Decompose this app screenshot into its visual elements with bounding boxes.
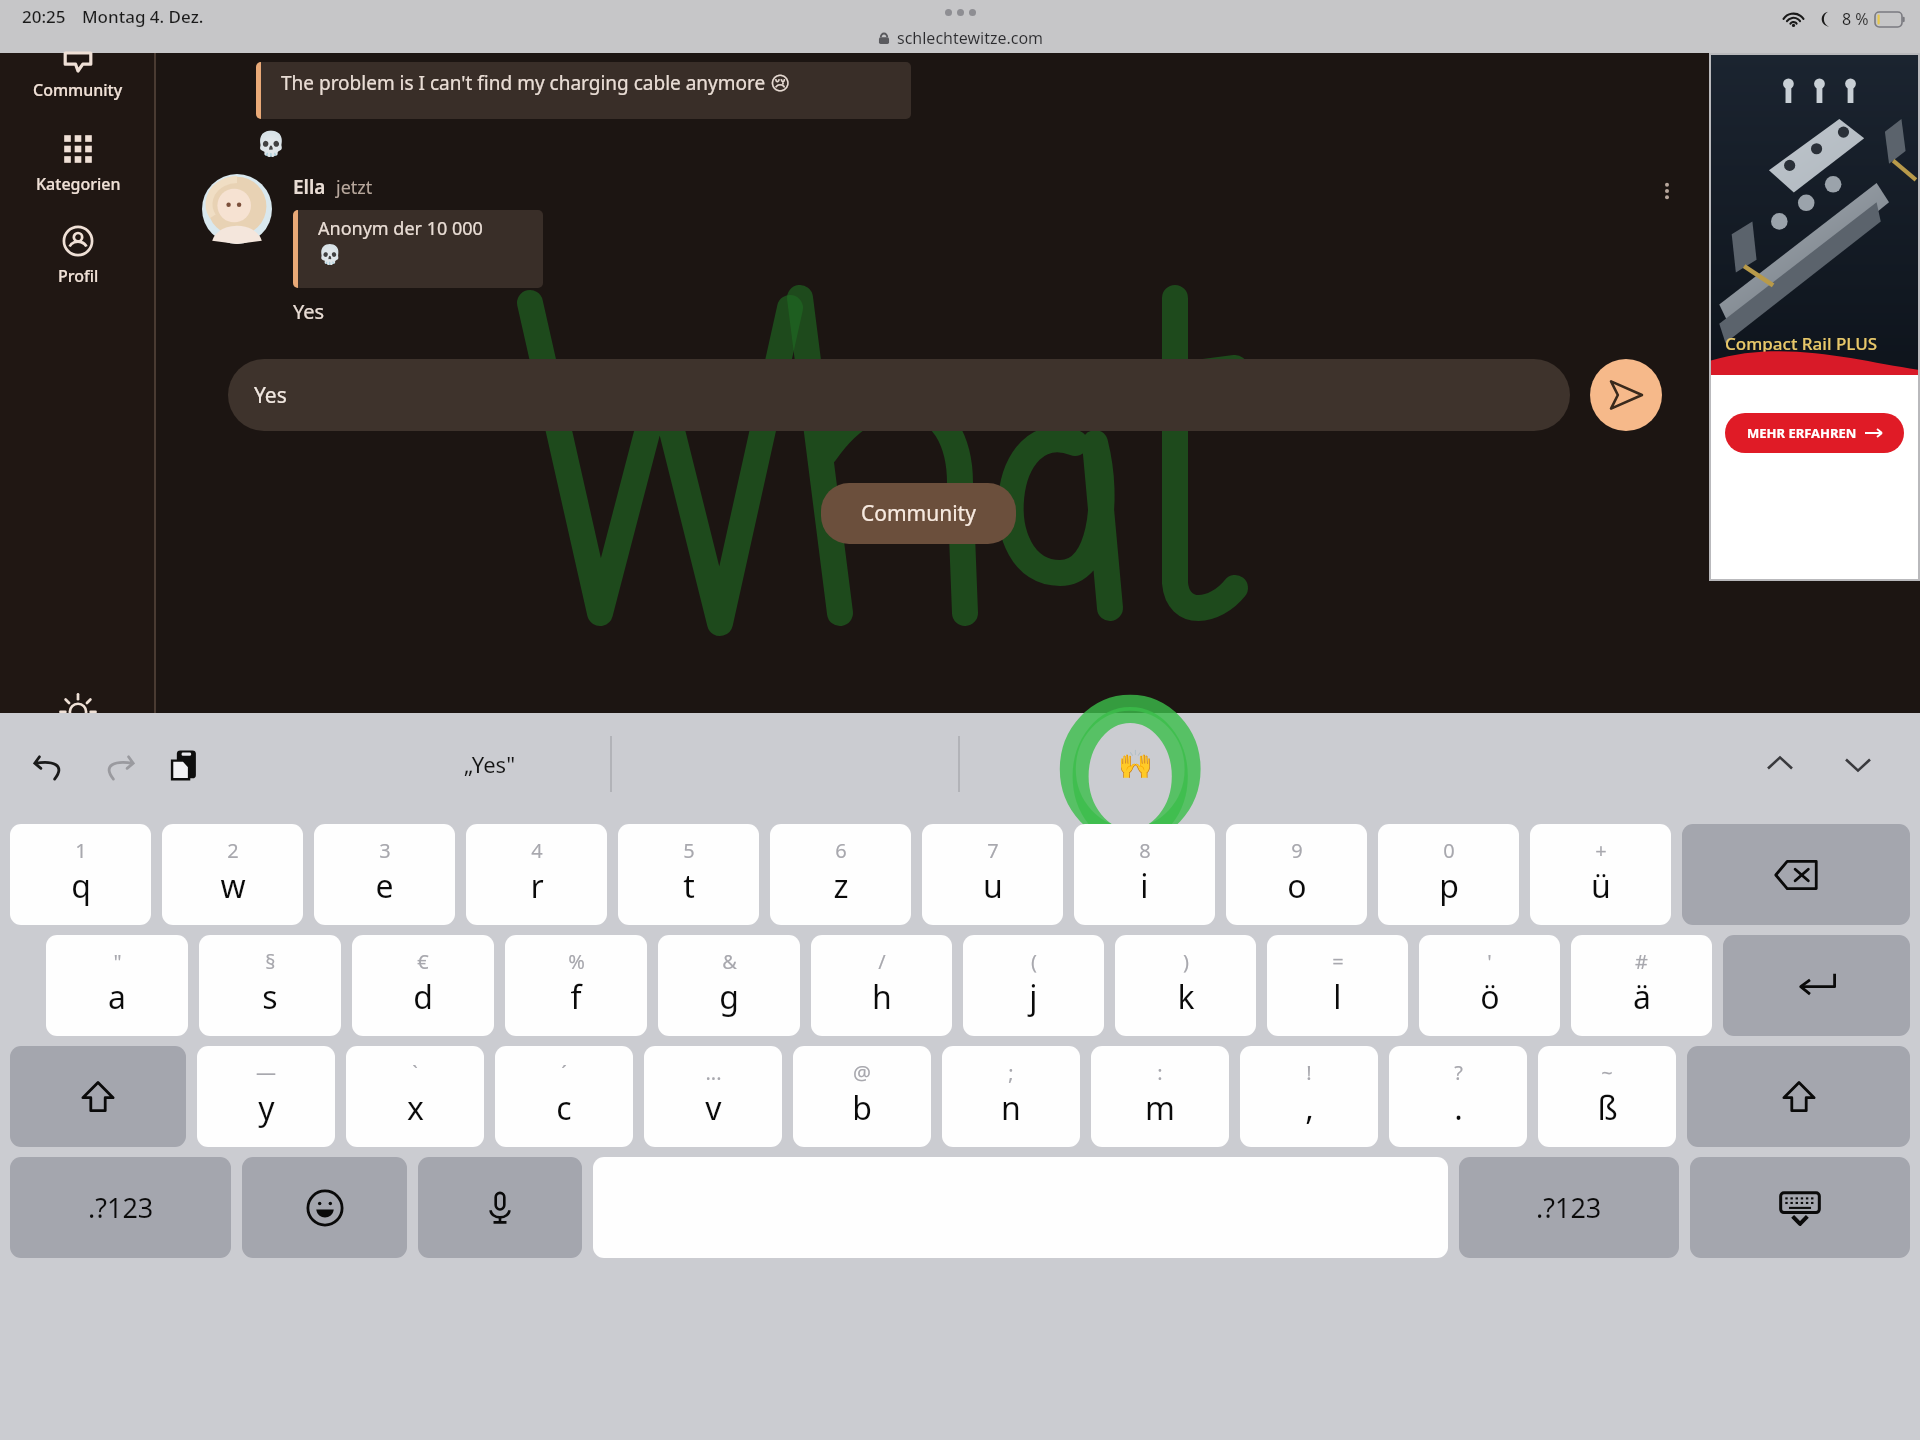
button[interactable]: Umschalt xyxy=(10,1046,186,1147)
button[interactable]: : xyxy=(1091,1046,1229,1147)
staticText: @ xyxy=(853,1059,871,1086)
button[interactable]: Löschen xyxy=(1682,824,1910,925)
button[interactable]: 🙌 xyxy=(1040,713,1230,815)
staticText: MEHR ERFAHREN xyxy=(1747,424,1857,442)
staticText: . xyxy=(1454,1086,1463,1130)
staticText: 8 xyxy=(1139,837,1151,864)
button[interactable]: Community xyxy=(821,483,1016,544)
button[interactable]: 4 xyxy=(466,824,607,925)
button[interactable]: " xyxy=(46,935,188,1036)
staticText: n xyxy=(1001,1086,1021,1130)
staticText: ´ xyxy=(561,1059,567,1086)
button[interactable]: 2 xyxy=(162,824,303,925)
staticText: Anonym der 10 000 xyxy=(318,216,483,241)
button[interactable]: Community xyxy=(0,53,156,101)
staticText: 8 % xyxy=(1842,8,1869,30)
button[interactable]: Emoji xyxy=(242,1157,407,1258)
button[interactable]: Mehr Optionen xyxy=(1650,174,1684,208)
staticText: Yes xyxy=(254,381,287,410)
button[interactable]: ... xyxy=(644,1046,782,1147)
button[interactable]: 8 xyxy=(1074,824,1215,925)
staticText: The problem is I can't find my charging … xyxy=(281,70,790,96)
staticText: 3 xyxy=(379,837,391,864)
button[interactable]: 1 xyxy=(10,824,151,925)
staticText: % xyxy=(568,948,585,975)
button[interactable]: Vorheriges Feld xyxy=(1754,738,1806,790)
staticText: .?123 xyxy=(1536,1189,1602,1226)
staticText: schlechtewitze.com xyxy=(897,27,1044,49)
staticText: u xyxy=(983,864,1003,908)
button[interactable]: # xyxy=(1571,935,1712,1036)
button[interactable]: @ xyxy=(793,1046,931,1147)
button[interactable]: Zahlen und Symbole xyxy=(1459,1157,1679,1258)
staticText: o xyxy=(1287,864,1307,908)
button[interactable]: Diktat xyxy=(418,1157,582,1258)
button[interactable]: ? xyxy=(1389,1046,1527,1147)
button[interactable]: — xyxy=(197,1046,335,1147)
button[interactable]: & xyxy=(658,935,800,1036)
button[interactable]: Einfügen xyxy=(162,741,208,787)
button[interactable]: 0 xyxy=(1378,824,1519,925)
staticText: ... xyxy=(705,1059,722,1086)
button[interactable]: = xyxy=(1267,935,1408,1036)
button[interactable]: 7 xyxy=(922,824,1063,925)
button[interactable]: MEHR ERFAHREN xyxy=(1725,413,1904,453)
button[interactable]: ' xyxy=(1419,935,1560,1036)
button[interactable]: Widerrufen xyxy=(28,741,74,787)
staticText: v xyxy=(705,1086,722,1130)
staticText: z xyxy=(833,864,849,908)
button[interactable]: ` xyxy=(346,1046,484,1147)
button[interactable]: Nächstes Feld xyxy=(1832,738,1884,790)
staticText: 🙌 xyxy=(1118,748,1153,781)
button[interactable]: Yes xyxy=(228,359,1570,431)
button[interactable]: Senden xyxy=(1590,359,1662,431)
button[interactable]: ´ xyxy=(495,1046,633,1147)
button[interactable]: Profil xyxy=(0,225,156,287)
staticText: g xyxy=(719,975,739,1019)
staticText: r xyxy=(530,864,544,908)
button[interactable]: % xyxy=(505,935,647,1036)
button[interactable]: Zahlen und Symbole xyxy=(10,1157,231,1258)
button[interactable]: ( xyxy=(963,935,1104,1036)
staticText: ~ xyxy=(1601,1059,1613,1086)
staticText: 4 xyxy=(531,837,543,864)
button[interactable]: § xyxy=(199,935,341,1036)
staticText: „Yes" xyxy=(464,749,516,779)
staticText: ß xyxy=(1597,1086,1618,1130)
button[interactable]: Tastatur ausblenden xyxy=(1690,1157,1910,1258)
staticText: l xyxy=(1333,975,1342,1019)
staticText: 6 xyxy=(835,837,847,864)
button[interactable]: Compact Rail PLUS xyxy=(1711,55,1918,579)
button[interactable]: € xyxy=(352,935,494,1036)
button[interactable]: Eingabe xyxy=(1723,935,1910,1036)
staticText: 7 xyxy=(987,837,999,864)
staticText: s xyxy=(262,975,278,1019)
button[interactable]: / xyxy=(811,935,952,1036)
button[interactable]: 3 xyxy=(314,824,455,925)
button[interactable]: ; xyxy=(942,1046,1080,1147)
staticText: y xyxy=(258,1086,275,1130)
staticText: ; xyxy=(1008,1059,1014,1086)
staticText: & xyxy=(722,948,737,975)
staticText: q xyxy=(71,864,91,908)
button[interactable]: „Yes" xyxy=(370,713,610,815)
button[interactable]: 6 xyxy=(770,824,911,925)
button[interactable]: Umschalt xyxy=(1687,1046,1910,1147)
button[interactable]: 9 xyxy=(1226,824,1367,925)
staticText: ö xyxy=(1480,975,1500,1019)
staticText: Kategorien xyxy=(36,173,121,195)
button[interactable]: ~ xyxy=(1538,1046,1676,1147)
button[interactable]: Wiederholen xyxy=(94,741,140,787)
staticText: 1 xyxy=(75,837,87,864)
button[interactable]: ! xyxy=(1240,1046,1378,1147)
staticText: ' xyxy=(1487,948,1492,975)
staticText: Profil xyxy=(58,265,99,287)
button[interactable]: 5 xyxy=(618,824,759,925)
staticText: ? xyxy=(1454,1059,1463,1086)
button[interactable]: + xyxy=(1530,824,1671,925)
button[interactable]: ) xyxy=(1115,935,1256,1036)
staticText: 💀 xyxy=(318,243,342,265)
button[interactable]: Kategorien xyxy=(0,133,156,195)
staticText: .?123 xyxy=(88,1189,154,1226)
